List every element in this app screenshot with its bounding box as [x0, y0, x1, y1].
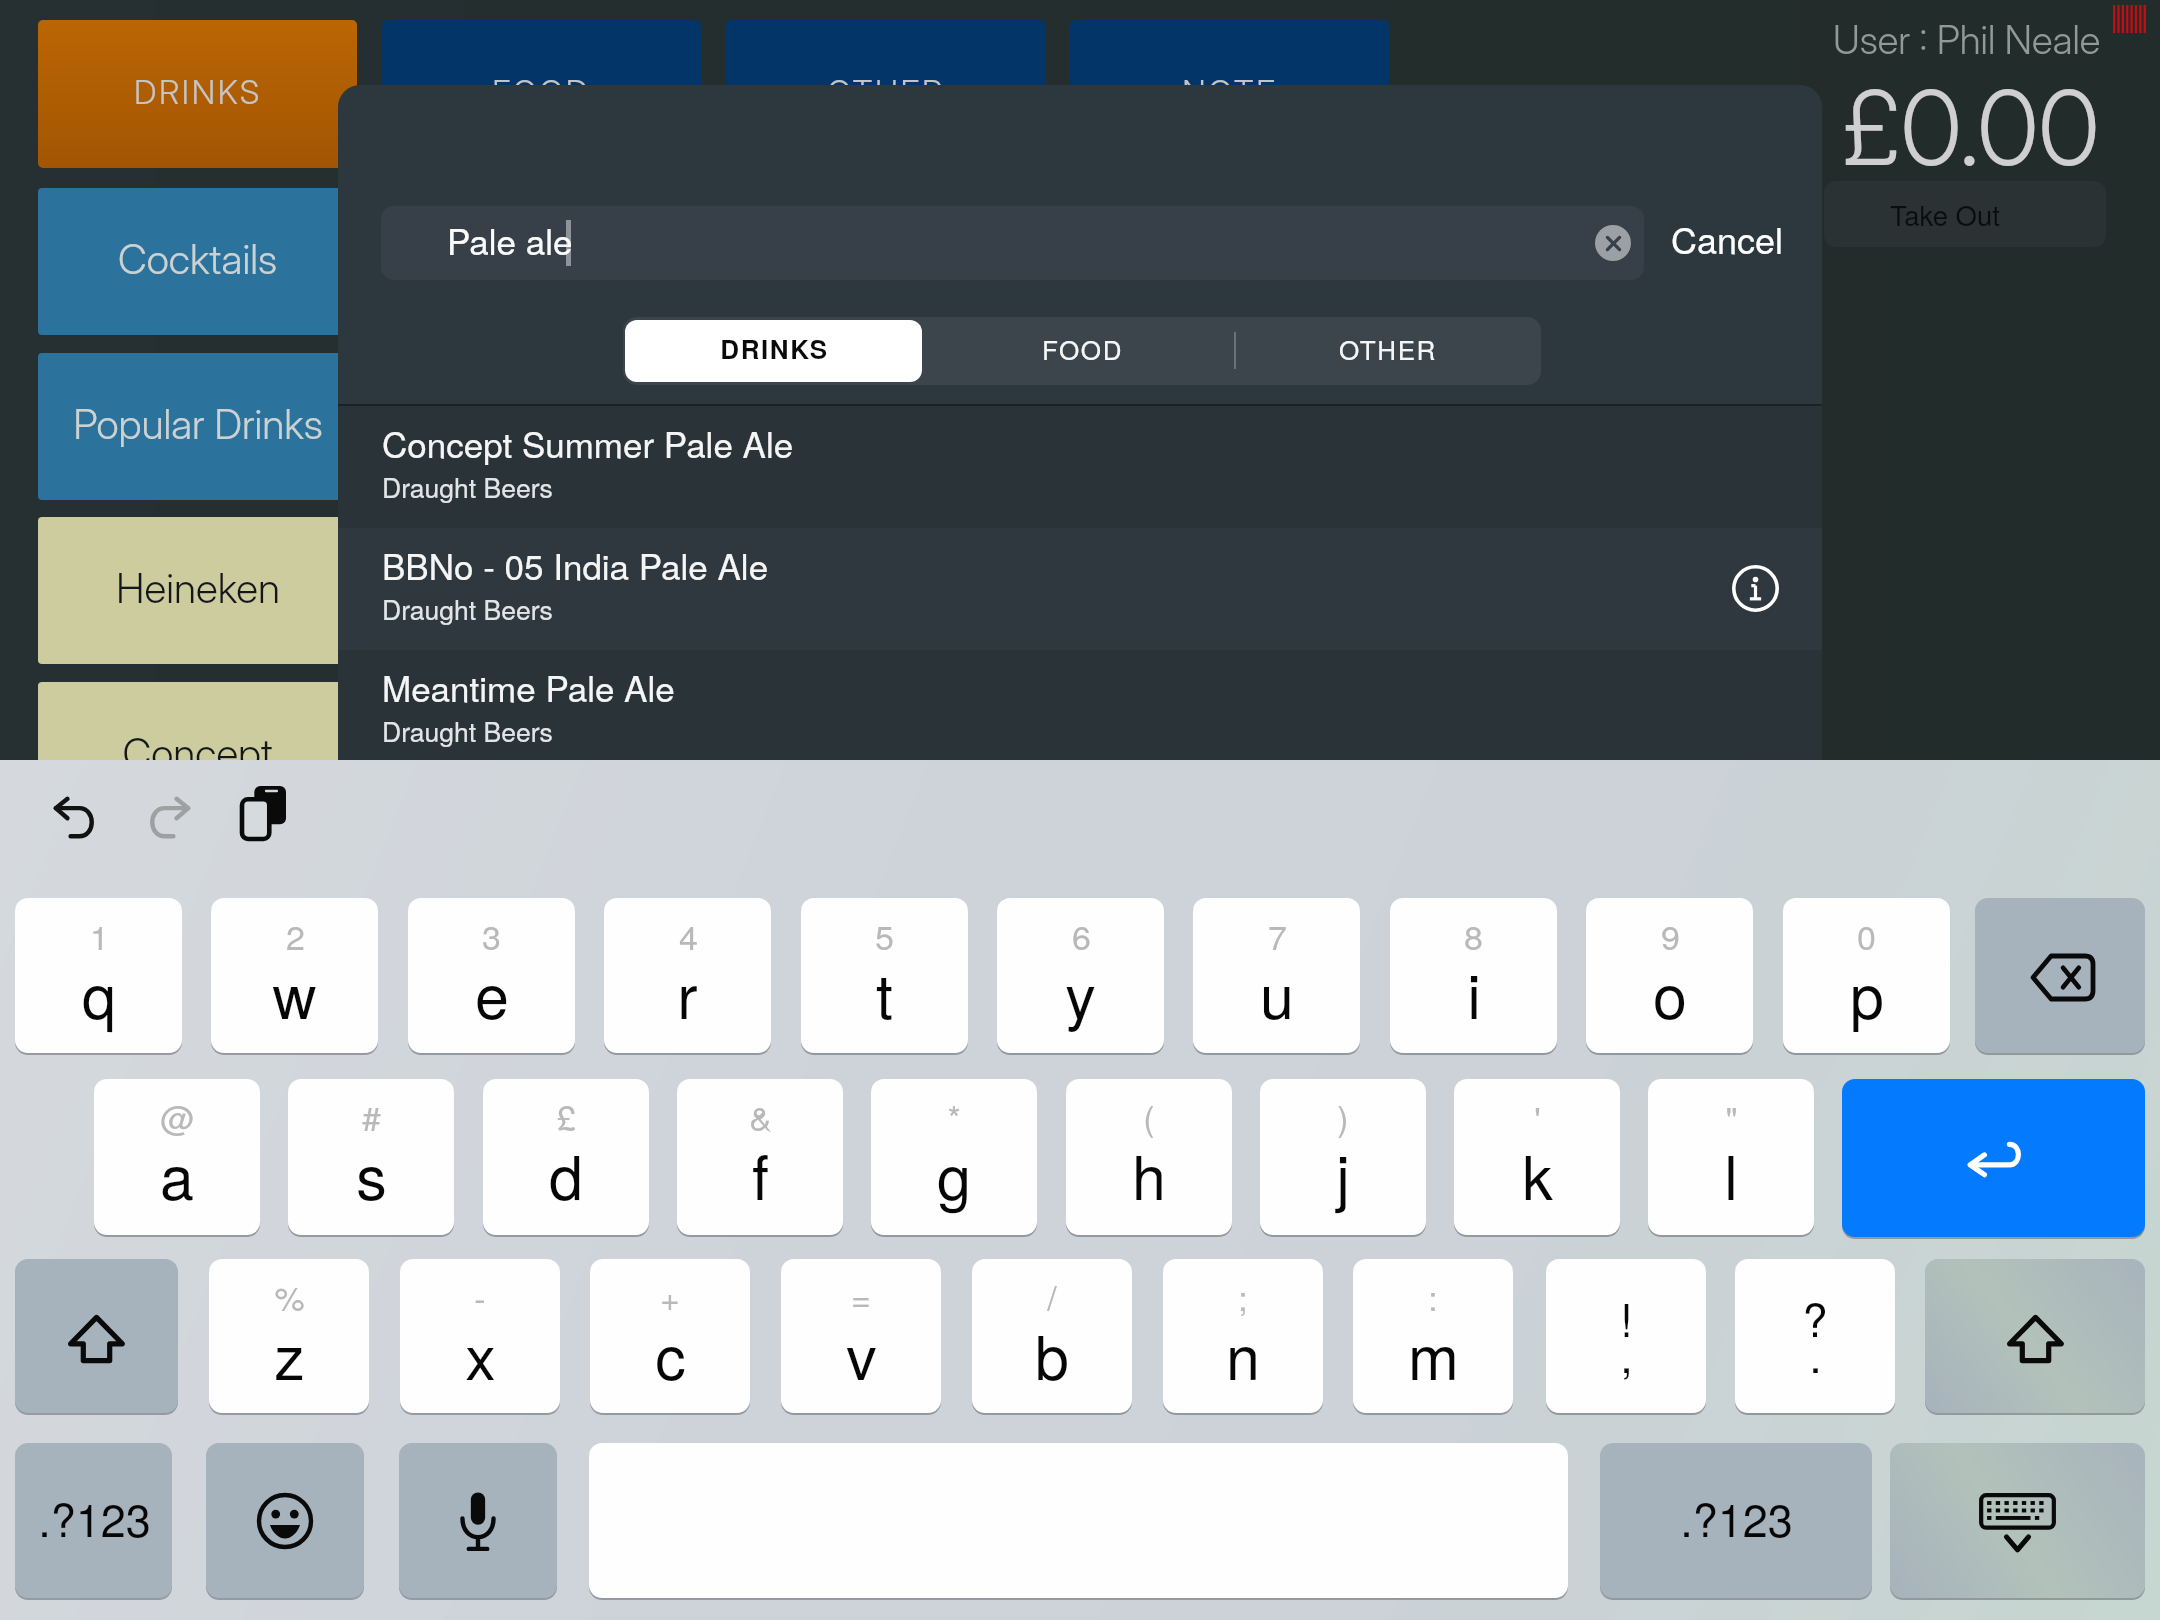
- button[interactable]: [408, 898, 575, 1053]
- staticText: e: [475, 949, 509, 1036]
- button[interactable]: Shift: [1925, 1259, 2145, 1413]
- button[interactable]: [15, 1443, 172, 1598]
- staticText: &: [749, 1092, 772, 1141]
- button[interactable]: [1586, 898, 1753, 1053]
- button[interactable]: BBNo - 05 India Pale Ale: [338, 528, 1822, 650]
- staticText: k: [1522, 1130, 1553, 1217]
- button[interactable]: [1193, 898, 1360, 1053]
- staticText: #: [362, 1092, 381, 1141]
- button[interactable]: [1546, 1259, 1706, 1413]
- staticText: 2: [286, 911, 305, 960]
- staticText: £0.00: [1842, 65, 2100, 190]
- button[interactable]: Item information: [1730, 563, 1780, 613]
- button[interactable]: FOOD: [929, 317, 1235, 385]
- button[interactable]: [972, 1259, 1132, 1413]
- button[interactable]: [1783, 898, 1950, 1053]
- button[interactable]: Backspace: [1975, 898, 2145, 1053]
- button[interactable]: [94, 1079, 260, 1235]
- button[interactable]: [1735, 1259, 1895, 1413]
- button[interactable]: Concept Summer Pale Ale: [338, 406, 1822, 528]
- button[interactable]: [1454, 1079, 1620, 1235]
- button[interactable]: Clear search text: [1595, 225, 1631, 261]
- button[interactable]: [1260, 1079, 1426, 1235]
- button[interactable]: FOOD: [382, 20, 701, 168]
- staticText: d: [549, 1130, 583, 1217]
- button[interactable]: [381, 206, 1644, 280]
- button[interactable]: NOTE: [1070, 20, 1389, 168]
- staticText: y: [1065, 949, 1096, 1036]
- staticText: @: [160, 1092, 195, 1141]
- staticText: v: [846, 1310, 877, 1397]
- staticText: Concept: [122, 728, 273, 778]
- button[interactable]: [1648, 1079, 1814, 1235]
- button[interactable]: [211, 898, 378, 1053]
- button[interactable]: [871, 1079, 1037, 1235]
- button[interactable]: Voice input: [399, 1443, 557, 1598]
- staticText: .?123: [38, 1485, 151, 1549]
- staticText: q: [82, 949, 116, 1036]
- staticText: s: [356, 1130, 387, 1217]
- button[interactable]: OTHER: [1235, 317, 1541, 385]
- button[interactable]: [209, 1259, 369, 1413]
- staticText: l: [1724, 1130, 1738, 1217]
- staticText: FOOD: [492, 72, 591, 112]
- button[interactable]: [288, 1079, 454, 1235]
- button[interactable]: [1600, 1443, 1872, 1598]
- staticText: r: [677, 949, 698, 1036]
- staticText: t: [876, 949, 893, 1036]
- staticText: (: [1143, 1092, 1155, 1141]
- button[interactable]: Redo: [129, 777, 209, 857]
- button[interactable]: Return: [1842, 1079, 2145, 1237]
- staticText: !: [1620, 1285, 1633, 1349]
- button[interactable]: Cancel: [1663, 212, 1787, 272]
- staticText: OTHER: [1339, 330, 1437, 367]
- staticText: ": [1725, 1092, 1738, 1141]
- staticText: Cocktails: [118, 234, 277, 284]
- staticText: o: [1653, 949, 1687, 1036]
- button[interactable]: OTHER: [726, 20, 1045, 168]
- button[interactable]: DRINKS: [625, 320, 922, 382]
- staticText: 6: [1072, 911, 1091, 960]
- staticText: Popular Drinks: [73, 399, 323, 449]
- button[interactable]: [604, 898, 771, 1053]
- staticText: w: [272, 949, 317, 1036]
- button[interactable]: [801, 898, 968, 1053]
- button[interactable]: Emoji: [206, 1443, 364, 1598]
- button[interactable]: [1353, 1259, 1513, 1413]
- button[interactable]: [781, 1259, 941, 1413]
- button[interactable]: [590, 1259, 750, 1413]
- staticText: 5: [875, 911, 894, 960]
- button[interactable]: Concept: [38, 682, 357, 829]
- button[interactable]: [1163, 1259, 1323, 1413]
- staticText: Draught Beers: [382, 468, 553, 506]
- button[interactable]: DRINKS: [38, 20, 357, 168]
- staticText: DRINKS: [720, 330, 829, 367]
- button[interactable]: [997, 898, 1164, 1053]
- button[interactable]: [677, 1079, 843, 1235]
- staticText: NOTE: [1182, 72, 1278, 112]
- button[interactable]: [483, 1079, 649, 1235]
- staticText: u: [1260, 949, 1294, 1036]
- button[interactable]: Popular Drinks: [38, 353, 357, 500]
- staticText: /: [1047, 1272, 1057, 1321]
- staticText: =: [851, 1272, 871, 1321]
- button[interactable]: [1390, 898, 1557, 1053]
- staticText: a: [160, 1130, 194, 1217]
- button[interactable]: Paste: [224, 772, 304, 852]
- button[interactable]: Heineken: [38, 517, 357, 664]
- staticText: z: [274, 1310, 305, 1397]
- button[interactable]: Take Out: [1824, 181, 2106, 247]
- button[interactable]: Cocktails: [38, 188, 357, 335]
- staticText: -: [474, 1272, 486, 1321]
- button[interactable]: [400, 1259, 560, 1413]
- button[interactable]: Hide keyboard: [1890, 1443, 2145, 1598]
- button[interactable]: Meantime Pale Ale: [338, 650, 1822, 772]
- button[interactable]: [15, 898, 182, 1053]
- button[interactable]: [1066, 1079, 1232, 1235]
- staticText: 9: [1661, 911, 1680, 960]
- button[interactable]: Shift: [15, 1259, 178, 1413]
- staticText: g: [937, 1130, 971, 1217]
- button[interactable]: Undo: [34, 777, 114, 857]
- staticText: x: [465, 1310, 496, 1397]
